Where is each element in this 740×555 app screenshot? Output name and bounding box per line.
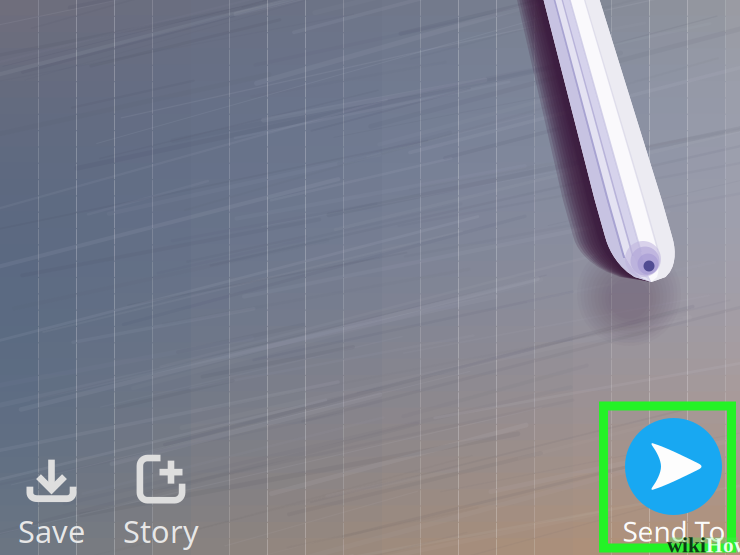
button[interactable]: Send To — [599, 401, 736, 552]
button[interactable]: Story — [109, 454, 213, 552]
staticText: Save — [18, 511, 85, 551]
button[interactable]: Save — [0, 454, 103, 552]
staticText: wiki — [667, 533, 706, 555]
staticText: How — [706, 533, 740, 555]
staticText: Story — [123, 511, 199, 551]
staticText: Send To — [622, 512, 725, 550]
